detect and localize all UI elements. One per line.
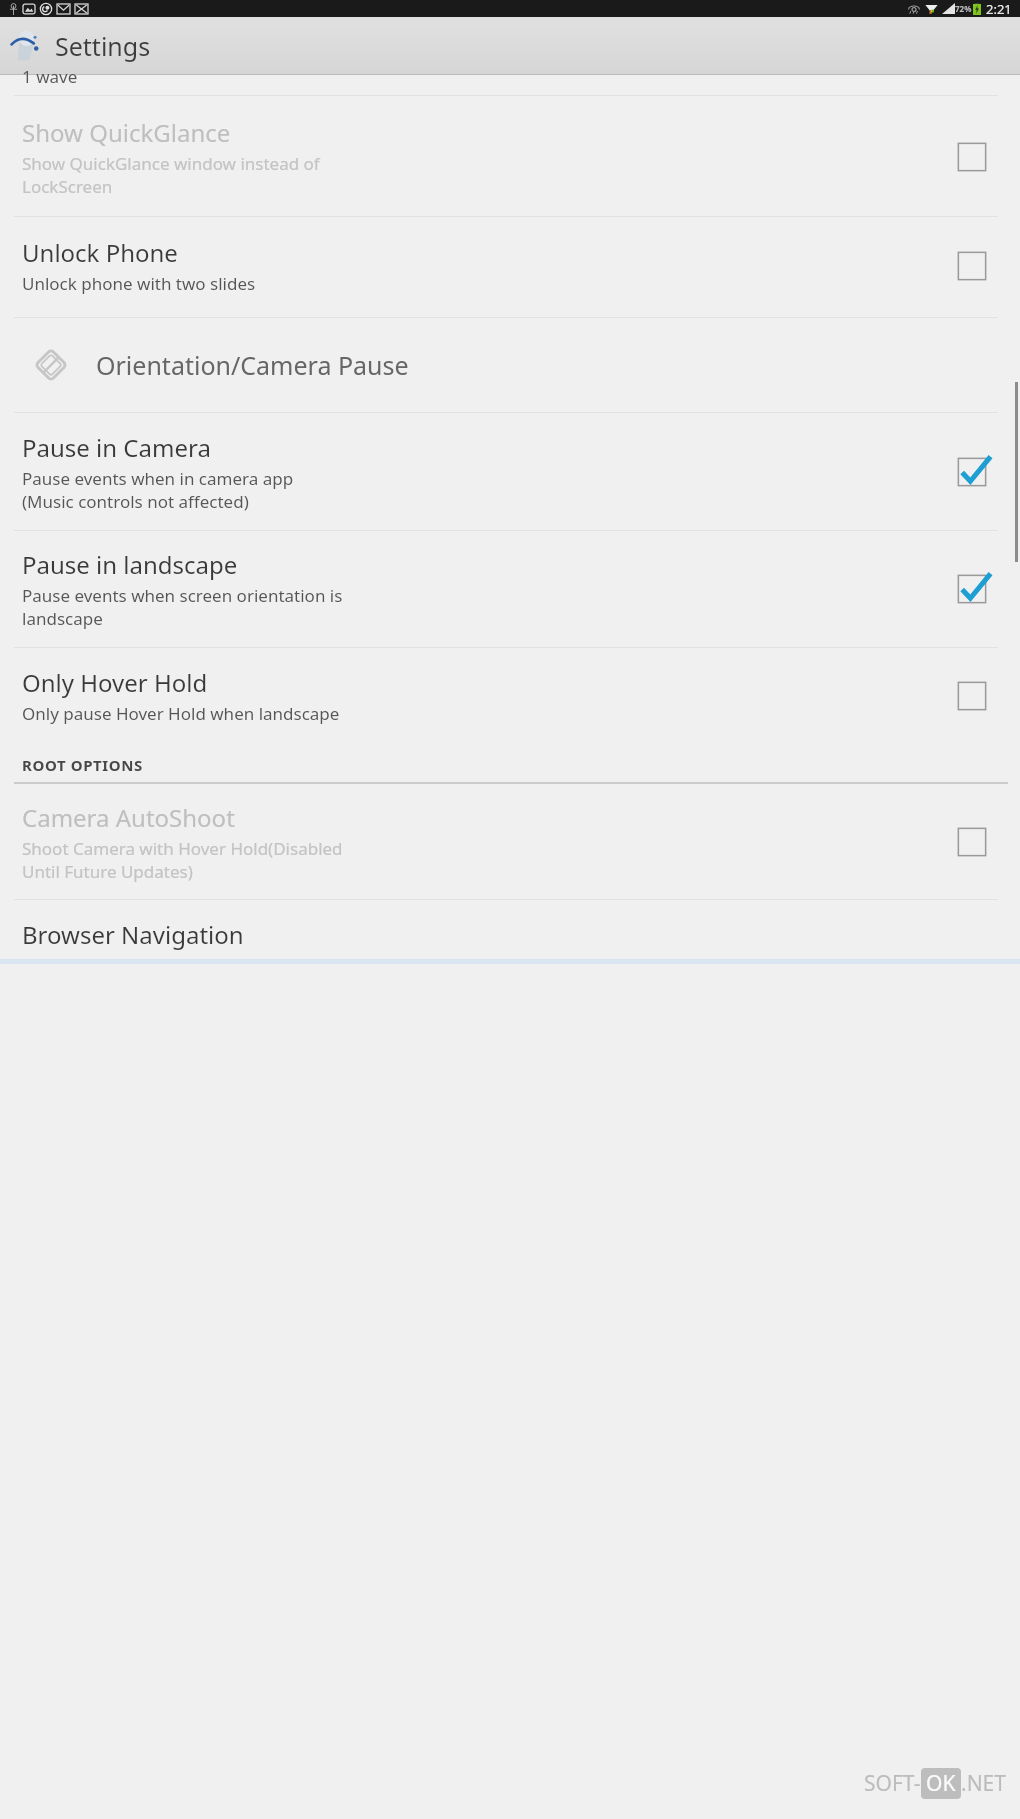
staticText: Unlock Phone xyxy=(22,236,178,269)
button[interactable]: Unchecked xyxy=(950,674,994,718)
button[interactable]: Checked xyxy=(950,567,994,611)
staticText: 72% xyxy=(955,3,972,14)
staticText: Pause events when in camera app (Music c… xyxy=(22,467,294,513)
button[interactable]: Pause in landscape xyxy=(0,531,1020,647)
staticText: Browser Navigation xyxy=(22,918,244,951)
staticText: Pause events when screen orientation is … xyxy=(22,584,343,630)
staticText: ROOT OPTIONS xyxy=(22,755,143,775)
button[interactable]: Unlock Phone xyxy=(0,217,1020,317)
button[interactable]: Unchecked xyxy=(950,135,994,179)
button[interactable]: Show QuickGlance xyxy=(0,96,1020,216)
staticText: Show QuickGlance window instead of LockS… xyxy=(22,152,320,198)
staticText: Only pause Hover Hold when landscape xyxy=(22,702,340,725)
staticText: Show QuickGlance xyxy=(22,116,231,149)
staticText: Pause in Camera xyxy=(22,431,211,464)
staticText: Pause in landscape xyxy=(22,548,238,581)
button[interactable]: Checked xyxy=(950,450,994,494)
staticText: Shoot Camera with Hover Hold(Disabled Un… xyxy=(22,837,343,883)
staticText: .NET xyxy=(961,1769,1006,1798)
button[interactable]: Unchecked xyxy=(950,820,994,864)
button[interactable]: Only Hover Hold xyxy=(0,648,1020,743)
button[interactable]: Pause in Camera xyxy=(0,413,1020,530)
staticText: 1 wave xyxy=(22,65,78,85)
staticText: Camera AutoShoot xyxy=(22,801,235,834)
staticText: Only Hover Hold xyxy=(22,666,208,699)
staticText: Settings xyxy=(55,29,151,63)
staticText: Unlock phone with two slides xyxy=(22,272,256,295)
button[interactable]: Camera AutoShoot xyxy=(0,784,1020,899)
staticText: Orientation/Camera Pause xyxy=(96,348,409,382)
staticText: 2:21 xyxy=(986,0,1012,17)
button[interactable]: Unchecked xyxy=(950,244,994,288)
staticText: SOFT- xyxy=(864,1769,921,1798)
staticText: OK xyxy=(926,1769,956,1798)
